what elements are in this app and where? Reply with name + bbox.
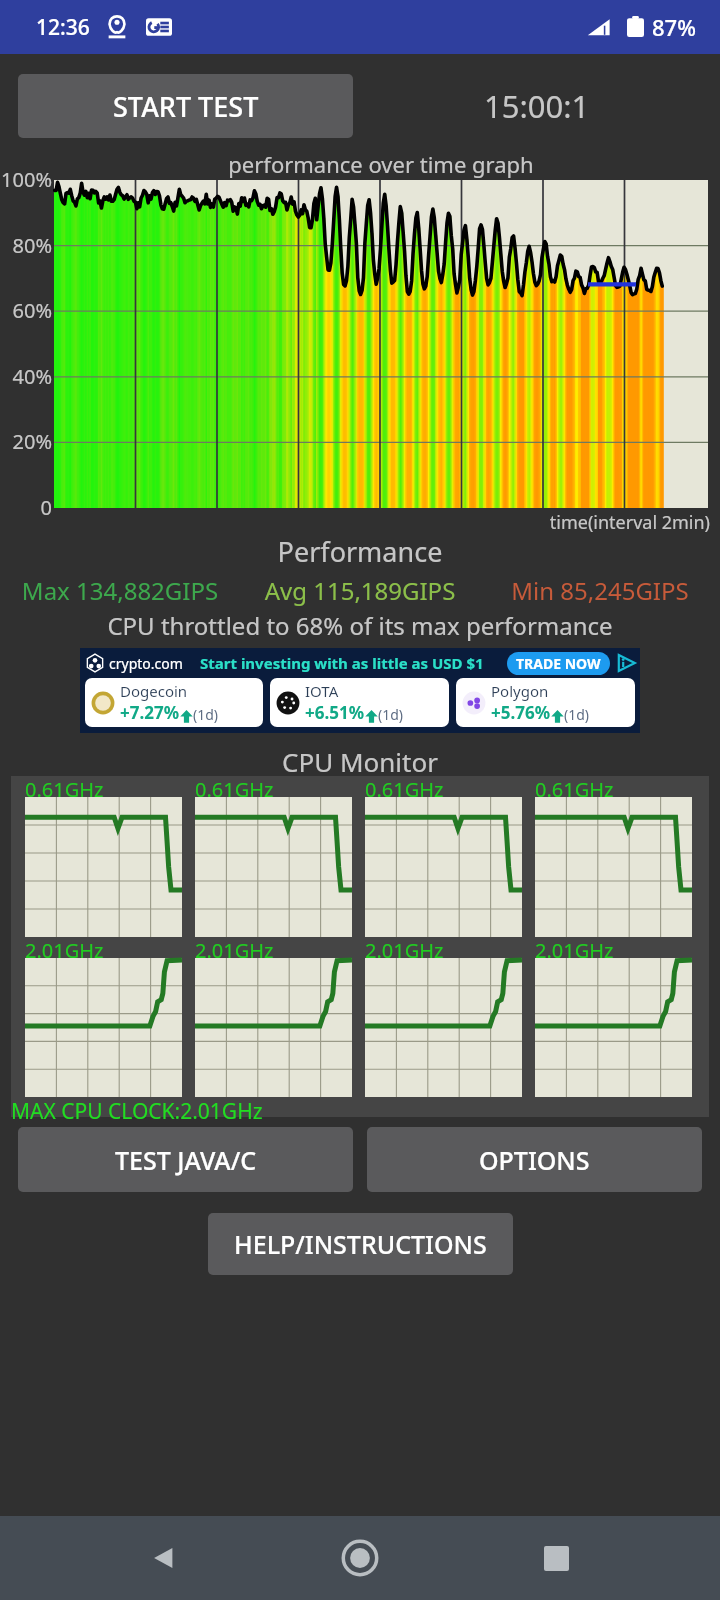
staticText: MAX CPU CLOCK:2.01GHz [11,1097,263,1126]
button[interactable]: IOTA [275,678,446,727]
staticText: 0.61GHz [25,776,104,803]
staticText: CPU Monitor [0,744,720,779]
button[interactable]: HELP/INSTRUCTIONS [208,1213,513,1275]
button[interactable]: Polygon [461,678,632,727]
staticText: 20% [0,428,52,455]
staticText: 2.01GHz [25,937,104,964]
staticText: Start investing with as little as USD $1 [200,653,484,673]
staticText: 2.01GHz [365,937,444,964]
staticText: Min 85,245GIPS [480,574,720,607]
staticText: Polygon [491,681,549,701]
staticText: 2.01GHz [195,937,274,964]
staticText: OPTIONS [479,1143,590,1177]
staticText: +7.27% [120,701,180,724]
staticText: Max 134,882GIPS [0,574,240,607]
button[interactable]: OPTIONS [367,1127,702,1192]
button[interactable]: Home [328,1526,392,1590]
staticText: 12:36 [36,13,90,42]
staticText: Avg 115,189GIPS [240,574,480,607]
staticText: +5.76% [491,701,551,724]
button[interactable]: Back [132,1526,196,1590]
staticText: TEST JAVA/C [115,1143,257,1177]
button[interactable]: START TEST [18,74,353,138]
staticText: CPU throttled to 68% of its max performa… [0,609,720,642]
staticText: 40% [0,363,52,390]
staticText: (1d) [193,705,219,724]
staticText: HELP/INSTRUCTIONS [234,1227,487,1261]
button[interactable]: crypto.com [80,648,640,733]
button[interactable]: TRADE NOW [516,654,601,673]
staticText: TRADE NOW [516,654,601,673]
staticText: 15:00:1 [484,85,590,127]
staticText: 60% [0,297,52,324]
button[interactable]: Ad info [616,653,636,673]
staticText: 0.61GHz [195,776,274,803]
staticText: 0 [0,494,52,521]
staticText: START TEST [113,88,259,125]
staticText: crypto.com [109,654,183,673]
staticText: (1d) [378,705,404,724]
staticText: +6.51% [305,701,365,724]
staticText: Dogecoin [120,681,188,701]
staticText: 0.61GHz [535,776,614,803]
staticText: (1d) [564,705,590,724]
staticText: Performance [0,533,720,570]
staticText: 100% [0,166,52,193]
staticText: 2.01GHz [535,937,614,964]
staticText: 80% [0,232,52,259]
staticText: 87% [652,12,696,42]
staticText: performance over time graph [42,149,720,179]
staticText: time(interval 2min) [0,510,710,535]
button[interactable]: Dogecoin [90,678,260,727]
button[interactable]: TEST JAVA/C [18,1127,353,1192]
staticText: 0.61GHz [365,776,444,803]
button[interactable]: Recent apps [524,1526,588,1590]
staticText: IOTA [305,681,339,701]
